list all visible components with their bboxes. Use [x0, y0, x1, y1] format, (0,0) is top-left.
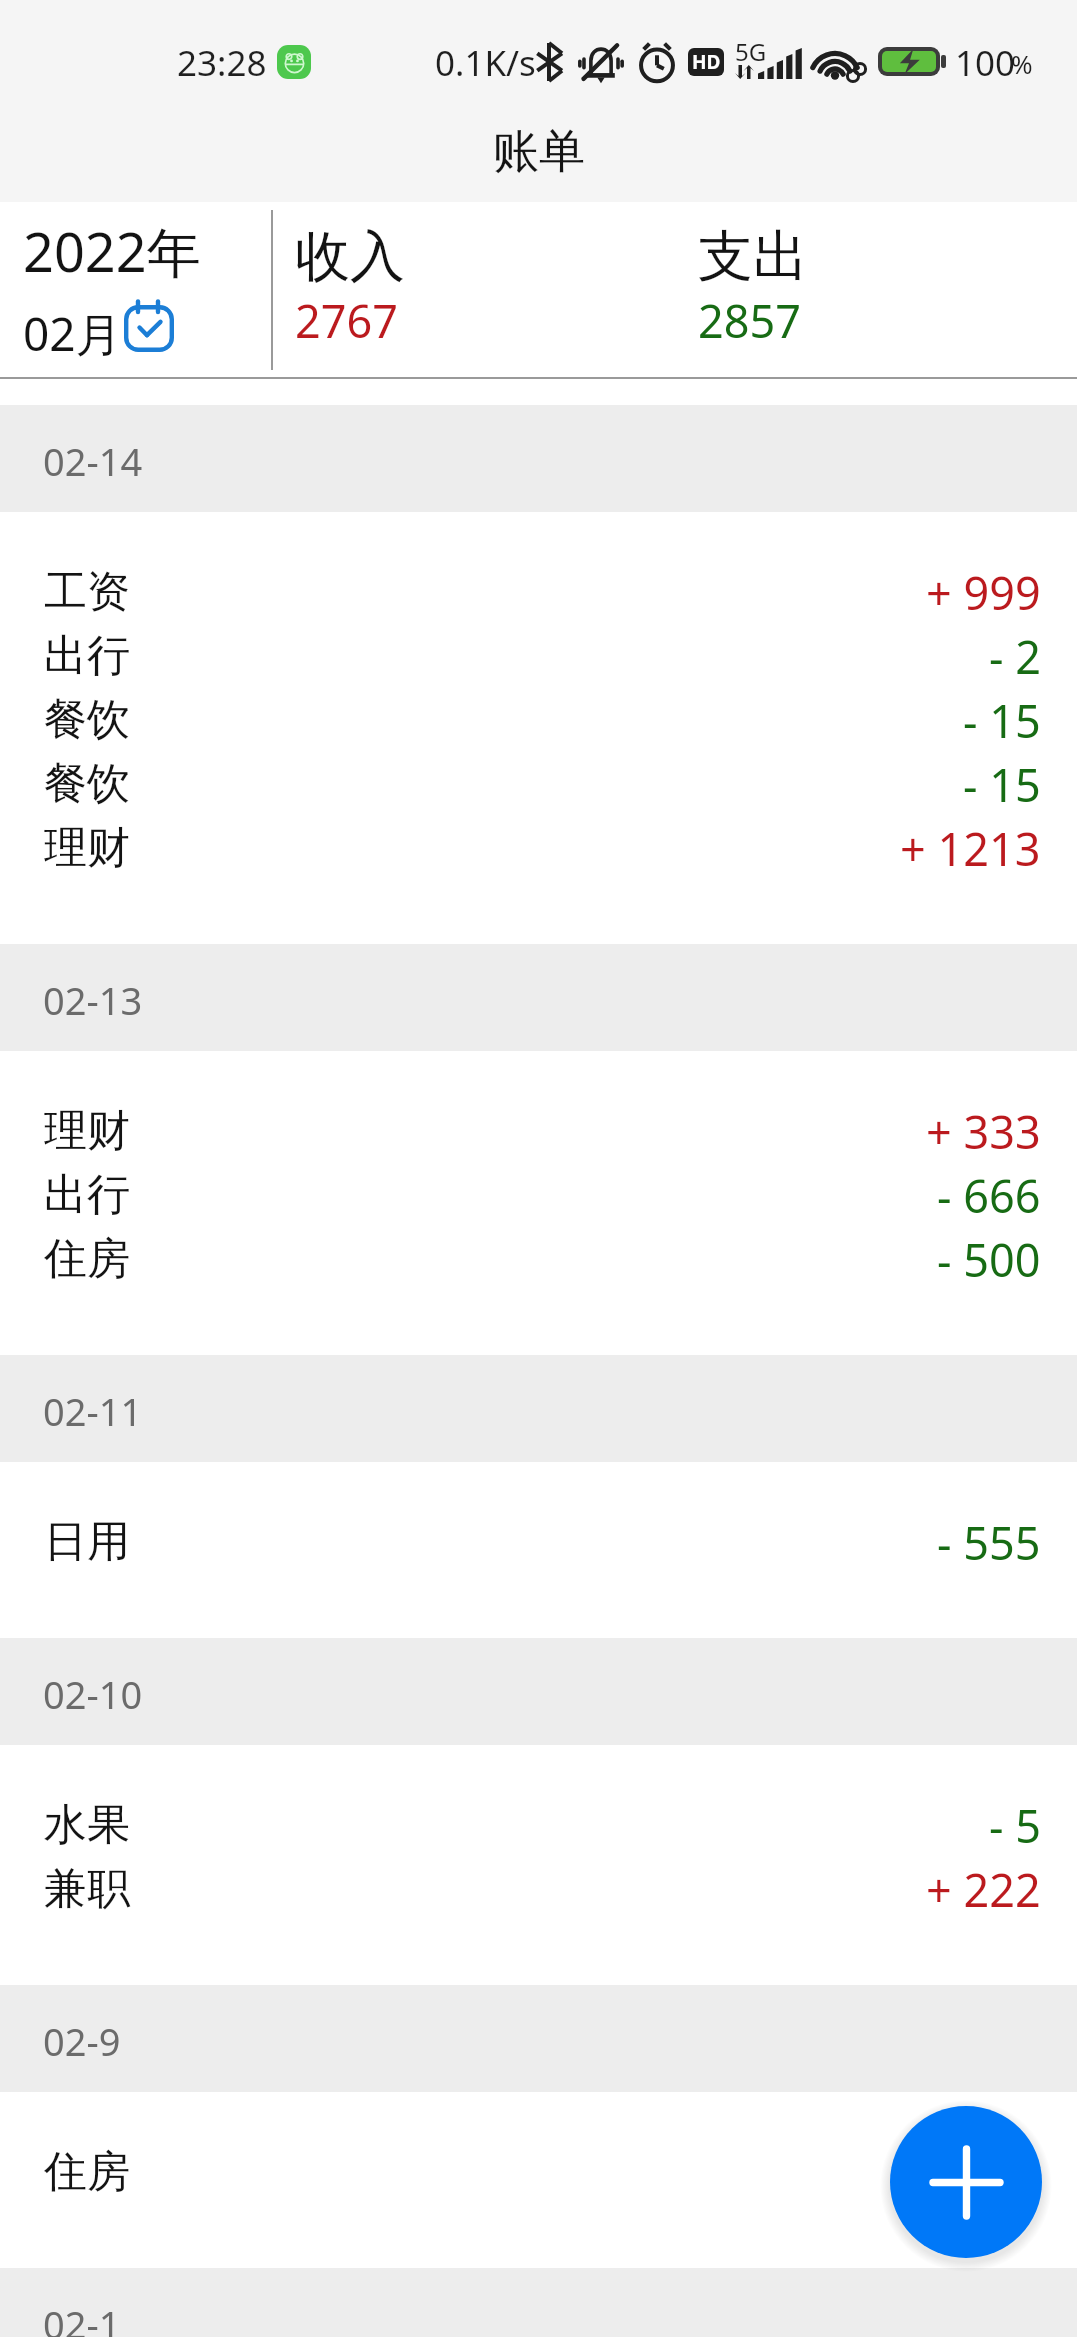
staticText: HD [692, 49, 721, 75]
staticText: 02-14 [43, 435, 143, 487]
staticText: + 222 [926, 1859, 1041, 1920]
staticText: 出行 [44, 629, 130, 683]
staticText: 02-13 [43, 974, 143, 1026]
button[interactable]: 餐饮 [0, 688, 1077, 752]
staticText: 02-11 [43, 1385, 143, 1437]
button[interactable]: 兼职 [0, 1857, 1077, 1921]
staticText: 02-10 [43, 1668, 143, 1720]
staticText: + 333 [926, 1101, 1041, 1162]
staticText: - 5 [989, 1795, 1041, 1856]
staticText: - 15 [963, 690, 1041, 751]
staticText: 餐饮 [44, 693, 130, 747]
staticText: 2022年 [23, 214, 201, 288]
staticText: 收入 [295, 222, 405, 291]
button[interactable]: 出行 [0, 624, 1077, 688]
staticText: + 1213 [900, 818, 1041, 879]
button[interactable]: Pick month [124, 301, 174, 352]
staticText: - 666 [937, 1165, 1041, 1226]
staticText: 出行 [44, 1168, 130, 1222]
button[interactable]: 02-14 [0, 405, 1077, 512]
staticText: 住房 [44, 1232, 130, 1286]
button[interactable]: 住房 [0, 1227, 1077, 1291]
staticText: 住房 [44, 2145, 130, 2199]
button[interactable]: 餐饮 [0, 752, 1077, 816]
staticText: - 2 [989, 626, 1041, 687]
button[interactable]: 02-11 [0, 1355, 1077, 1462]
staticText: 水果 [44, 1798, 130, 1852]
button[interactable]: 日用 [0, 1510, 1077, 1574]
staticText: 账单 [493, 123, 585, 181]
staticText: - 555 [937, 1512, 1041, 1573]
staticText: 2767 [295, 290, 398, 351]
staticText: - 500 [937, 1229, 1041, 1290]
button[interactable]: 02-9 [0, 1985, 1077, 2092]
button[interactable]: 支出 [676, 202, 1077, 379]
staticText: + 999 [926, 562, 1041, 623]
button[interactable]: 工资 [0, 560, 1077, 624]
staticText: 5G [735, 35, 767, 68]
staticText: 100 [955, 39, 1016, 87]
button[interactable]: 出行 [0, 1163, 1077, 1227]
button[interactable]: 收入 [273, 202, 676, 379]
button[interactable]: 住房 [0, 2140, 1077, 2204]
button[interactable]: Add record [890, 2106, 1042, 2258]
button[interactable]: 理财 [0, 816, 1077, 880]
button[interactable]: 水果 [0, 1793, 1077, 1857]
staticText: 工资 [44, 565, 130, 619]
button[interactable]: 02-13 [0, 944, 1077, 1051]
staticText: 支出 [698, 222, 808, 291]
button[interactable]: 02-10 [0, 1638, 1077, 1745]
staticText: 23:28 [177, 39, 267, 87]
staticText: 0.1K/s [435, 39, 536, 87]
staticText: - 500 [937, 2142, 1041, 2203]
staticText: 02-1 [43, 2298, 121, 2337]
staticText: % [1011, 46, 1033, 81]
button[interactable]: 2022年 [0, 202, 271, 379]
staticText: 理财 [44, 1104, 130, 1158]
staticText: 餐饮 [44, 757, 130, 811]
staticText: 日用 [44, 1515, 130, 1569]
staticText: 02-9 [43, 2015, 121, 2067]
staticText: 兼职 [44, 1862, 130, 1916]
staticText: 2857 [698, 290, 801, 351]
staticText: - 15 [963, 754, 1041, 815]
staticText: 理财 [44, 821, 130, 875]
button[interactable]: 理财 [0, 1099, 1077, 1163]
button[interactable]: 02-1 [0, 2268, 1077, 2337]
staticText: 02月 [23, 302, 122, 365]
